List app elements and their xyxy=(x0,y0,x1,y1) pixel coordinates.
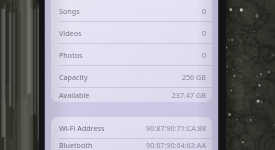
staticText: Wi-Fi Address xyxy=(59,123,105,133)
staticText: 0 xyxy=(201,28,206,38)
button[interactable]: Photos xyxy=(51,44,212,65)
button[interactable]: Wi-Fi Address xyxy=(51,117,212,138)
staticText: Photos xyxy=(59,50,83,60)
button[interactable]: Bluetooth xyxy=(51,139,212,150)
staticText: 237.47 GB xyxy=(171,90,206,100)
staticText: 256 GB xyxy=(181,72,206,82)
button[interactable]: Videos xyxy=(51,22,212,43)
staticText: Songs xyxy=(59,6,80,16)
staticText: 0 xyxy=(201,6,206,16)
button[interactable]: Capacity xyxy=(51,66,212,87)
button[interactable]: Songs xyxy=(51,0,212,21)
staticText: Bluetooth xyxy=(59,140,93,150)
staticText: Videos xyxy=(59,28,82,38)
staticText: 90:87:90:71:CA:88 xyxy=(146,123,206,133)
staticText: 90:87:90:64:63:AA xyxy=(146,140,206,150)
staticText: Available xyxy=(59,90,90,100)
staticText: 0 xyxy=(201,50,206,60)
button[interactable]: Available xyxy=(51,88,212,102)
staticText: Capacity xyxy=(59,72,88,82)
